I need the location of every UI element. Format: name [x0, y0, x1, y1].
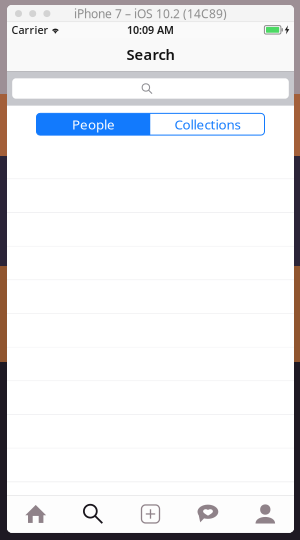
button[interactable]: New Post — [122, 495, 179, 533]
staticText: Collections — [174, 115, 240, 133]
button[interactable] — [12, 78, 289, 99]
staticText: Search — [126, 45, 174, 64]
button[interactable]: Profile — [237, 495, 294, 533]
staticText: People — [72, 115, 115, 133]
staticText: iPhone 7 – iOS 10.2 (14C89) — [74, 6, 227, 21]
button[interactable]: Search — [64, 495, 122, 533]
button[interactable]: Home — [7, 495, 64, 533]
staticText: 10:09 AM — [127, 23, 174, 37]
button[interactable]: People — [36, 113, 150, 135]
button[interactable]: Collections — [150, 113, 264, 135]
button[interactable]: Activity — [179, 495, 237, 533]
staticText: Carrier — [11, 23, 48, 37]
